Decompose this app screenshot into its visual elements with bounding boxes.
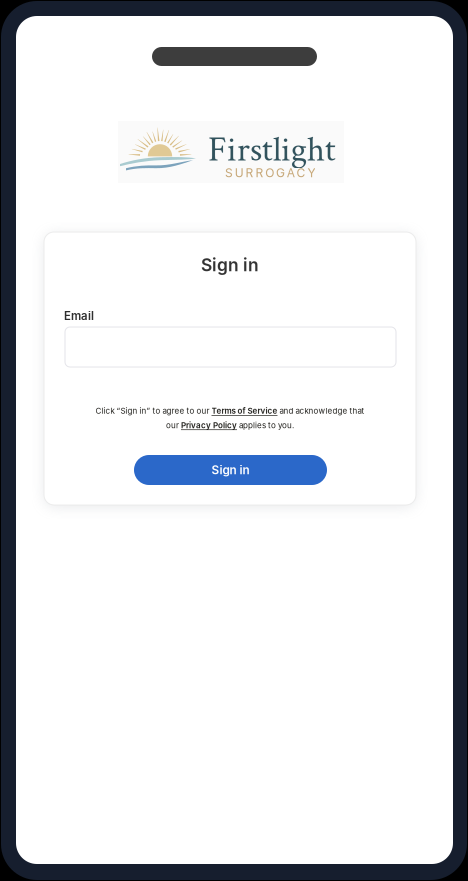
staticText: SURROGACY	[225, 166, 315, 180]
staticText: Click “Sign in” to agree to our Terms of…	[95, 406, 364, 415]
staticText: Sign in	[211, 463, 249, 477]
staticText: Email	[64, 309, 94, 323]
staticText: Firstlight	[208, 127, 336, 173]
staticText: our Privacy Policy applies to you.	[166, 420, 294, 430]
button[interactable]: Sign in	[134, 455, 327, 485]
staticText: Sign in	[201, 254, 259, 275]
